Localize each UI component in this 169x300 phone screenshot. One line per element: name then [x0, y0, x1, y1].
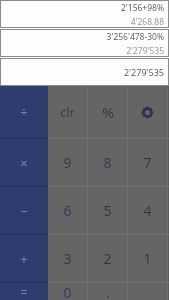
staticText: 2'279'535: [126, 45, 164, 55]
button[interactable]: 2: [88, 235, 127, 282]
button[interactable]: 5: [88, 187, 127, 234]
staticText: −: [20, 202, 28, 220]
staticText: 4'268.88: [130, 16, 164, 26]
staticText: 2'279'535: [123, 66, 164, 78]
button[interactable]: Clear: [48, 86, 87, 138]
staticText: ÷: [20, 103, 28, 121]
button[interactable]: 8: [88, 139, 127, 186]
staticText: =: [20, 283, 28, 300]
staticText: +: [20, 250, 28, 268]
staticText: .: [106, 283, 110, 300]
staticText: 0: [63, 283, 72, 300]
button[interactable]: Settings: [128, 86, 167, 138]
button[interactable]: 3: [48, 235, 87, 282]
staticText: 3'256'478-30%: [106, 31, 164, 43]
staticText: 2'156+98%: [120, 2, 164, 14]
button[interactable]: 1: [128, 235, 167, 282]
staticText: 6: [63, 201, 72, 220]
button[interactable]: 0: [48, 283, 87, 300]
staticText: 5: [103, 201, 112, 220]
button[interactable]: Percent: [88, 86, 127, 138]
staticText: 7: [143, 153, 152, 172]
staticText: clr: [60, 104, 75, 121]
staticText: 9: [63, 153, 72, 172]
button[interactable]: Subtract: [0, 187, 48, 234]
button[interactable]: 9: [48, 139, 87, 186]
button[interactable]: 2'156+98%: [0, 0, 169, 28]
button[interactable]: Add: [0, 235, 48, 282]
button[interactable]: 7: [128, 139, 167, 186]
staticText: 2: [103, 249, 112, 268]
staticText: 1: [143, 249, 152, 268]
staticText: 3: [63, 249, 72, 268]
staticText: ×: [20, 154, 28, 172]
button[interactable]: 3'256'478-30%: [0, 29, 169, 57]
button[interactable]: 4: [128, 187, 167, 234]
button[interactable]: 2'279'535: [0, 58, 169, 86]
button[interactable]: Divide: [0, 86, 48, 138]
staticText: 8: [103, 153, 112, 172]
button[interactable]: Equals: [0, 283, 48, 300]
staticText: %: [102, 103, 114, 122]
button[interactable]: 6: [48, 187, 87, 234]
staticText: 4: [143, 201, 152, 220]
button[interactable]: Multiply: [0, 139, 48, 186]
